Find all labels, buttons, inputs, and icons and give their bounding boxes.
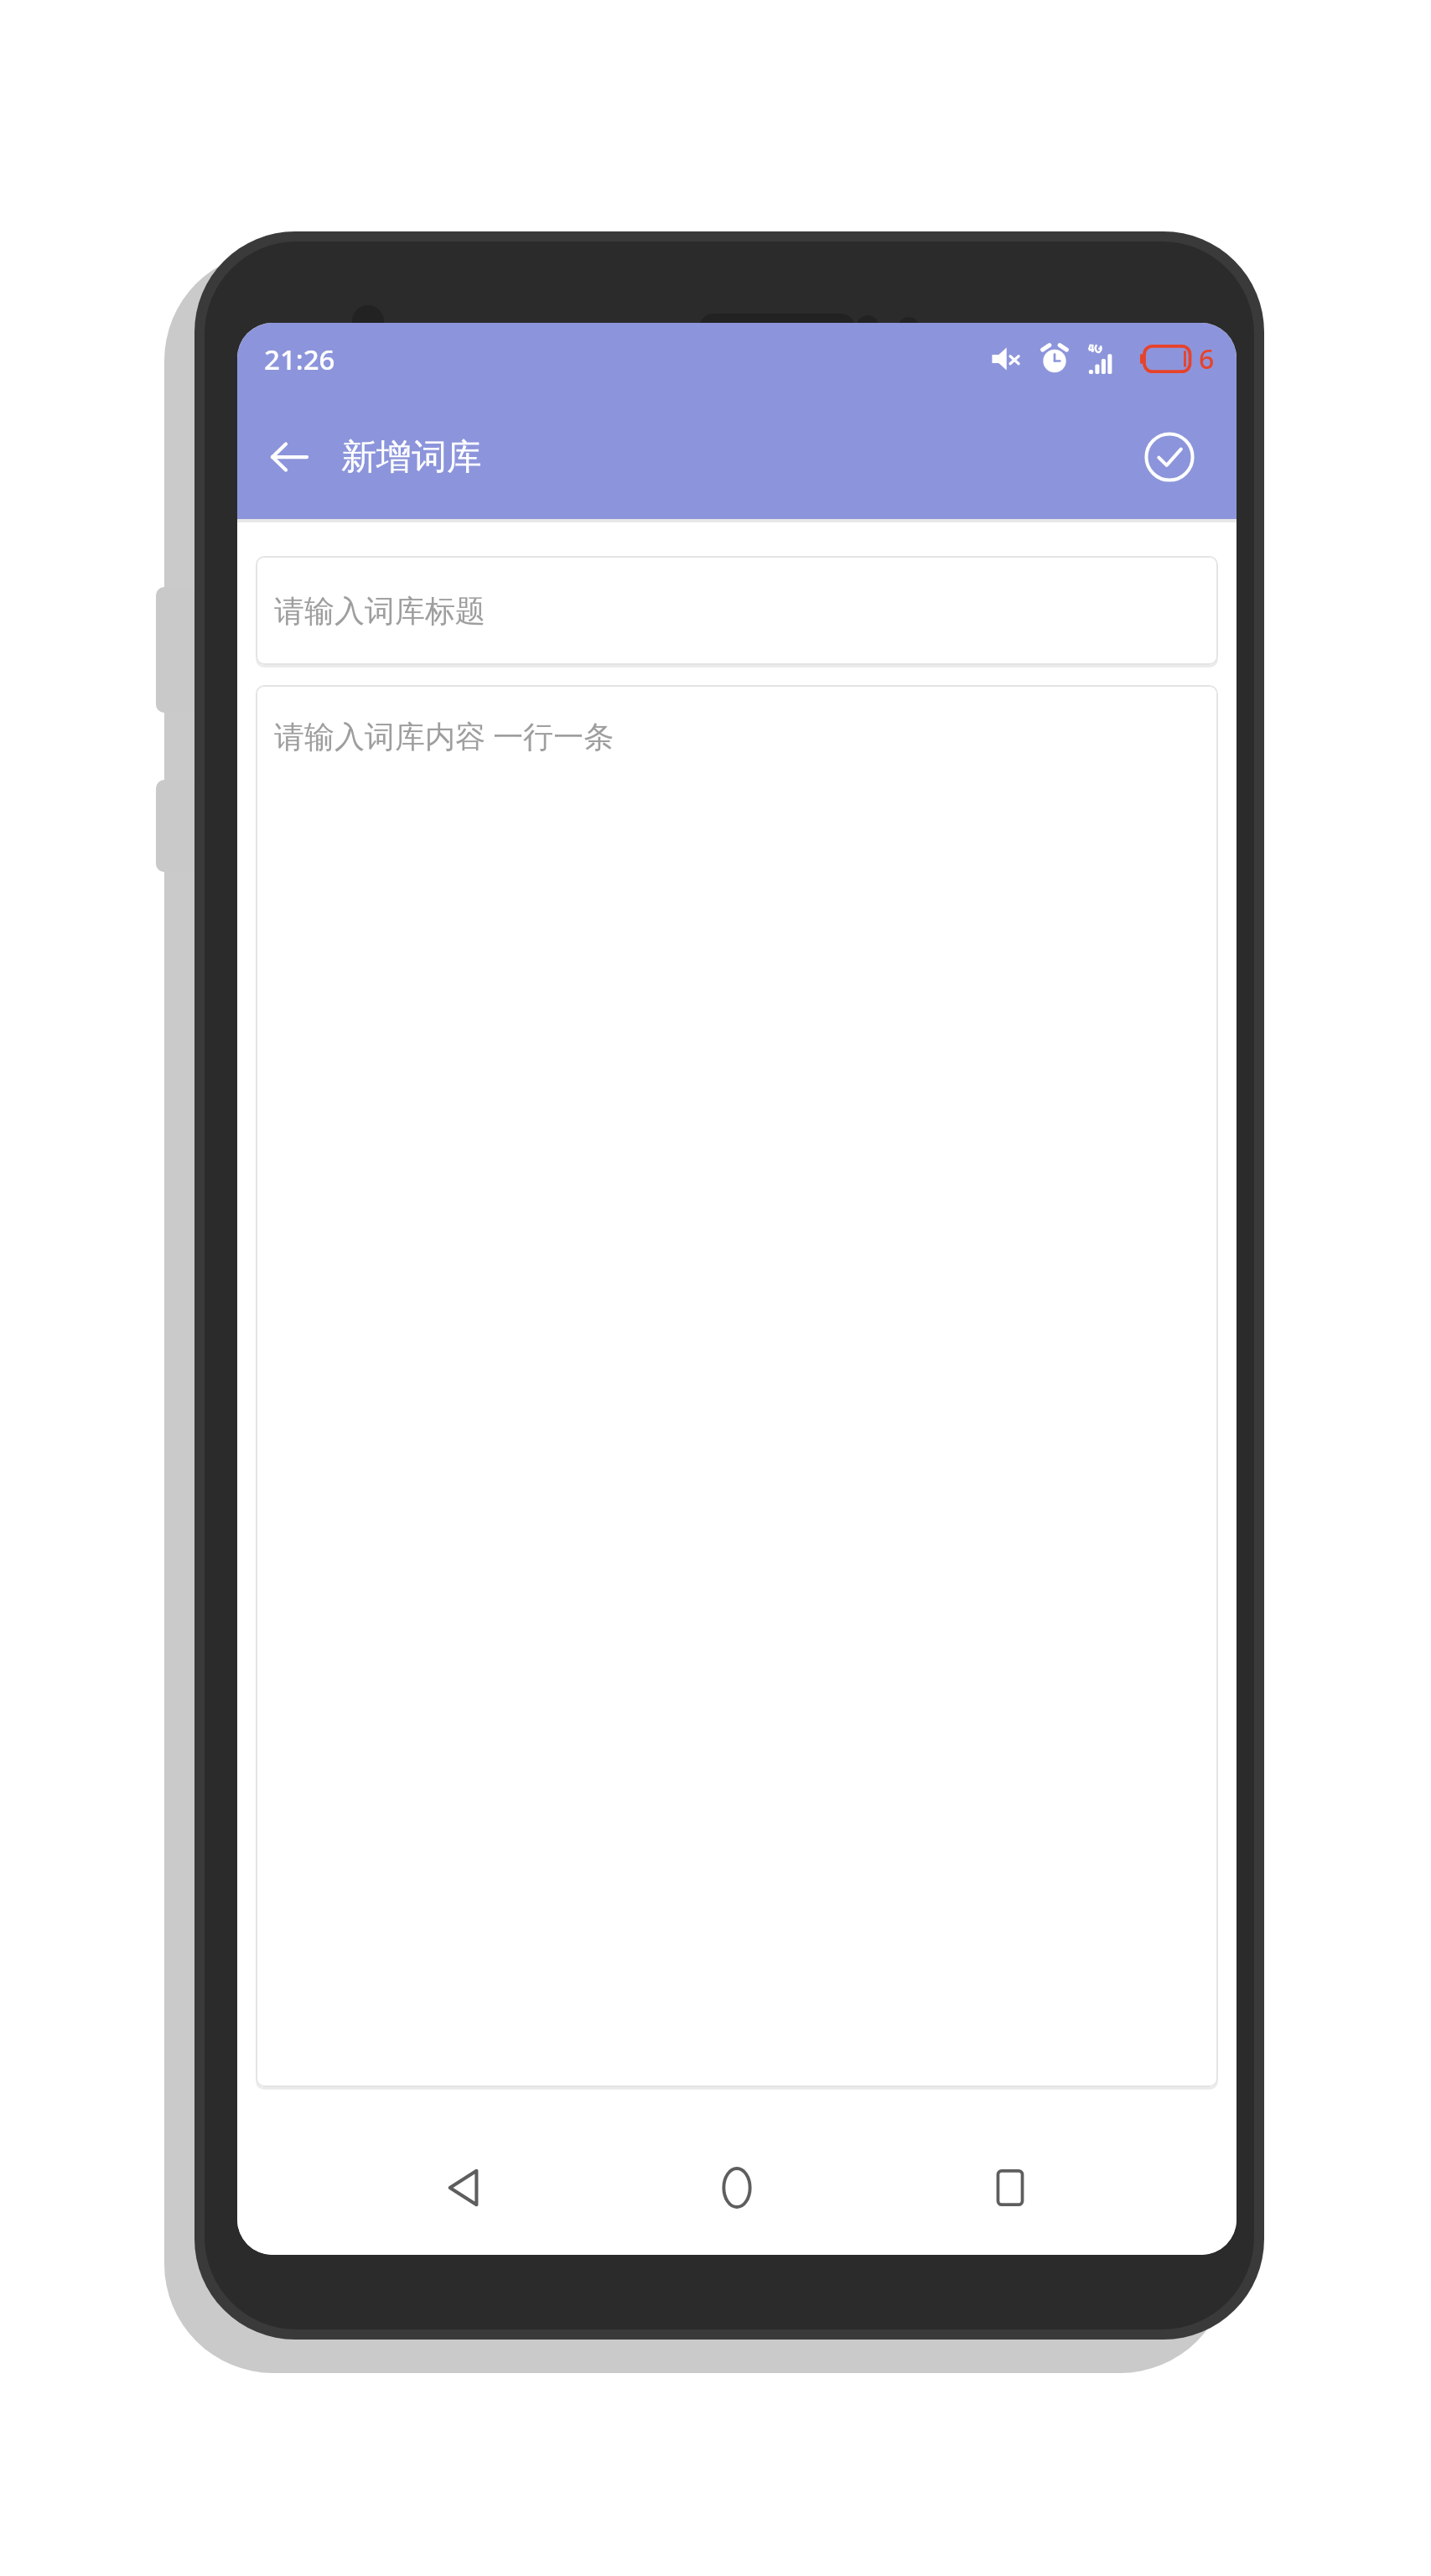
button[interactable]: 请输入词库内容 一行一条 [256, 685, 1218, 2087]
staticText: 请输入词库内容 一行一条 [274, 715, 614, 756]
staticText: 请输入词库标题 [274, 592, 485, 630]
staticText: 6 [1199, 340, 1215, 377]
button[interactable]: Home [691, 2142, 783, 2234]
button[interactable]: Recent apps [964, 2142, 1056, 2234]
staticText: 21:26 [264, 340, 335, 378]
button[interactable]: Back [257, 425, 321, 489]
button[interactable]: 请输入词库标题 [256, 556, 1218, 665]
staticText: 新增词库 [341, 435, 482, 480]
button[interactable]: Back [418, 2142, 511, 2234]
button[interactable]: Confirm [1134, 422, 1205, 492]
